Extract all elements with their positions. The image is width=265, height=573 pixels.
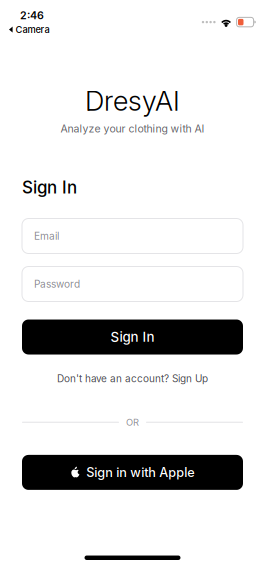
- button[interactable]: Camera: [9, 24, 49, 35]
- button[interactable]: Email: [22, 218, 243, 253]
- staticText: Camera: [15, 24, 49, 35]
- staticText: Don't have an account? Sign Up: [57, 372, 208, 385]
- staticText: DresyAI: [85, 84, 180, 117]
- staticText: Password: [34, 278, 80, 290]
- button[interactable]: Sign in with Apple: [22, 455, 243, 490]
- staticText: Sign In: [22, 177, 77, 197]
- staticText: Email: [34, 230, 59, 242]
- staticText: Sign In: [110, 329, 154, 345]
- button[interactable]: Password: [22, 266, 243, 301]
- staticText: OR: [126, 417, 139, 428]
- button[interactable]: Don't have an account? Sign Up: [51, 370, 214, 387]
- staticText: 2:46: [20, 9, 44, 22]
- staticText: Sign in with Apple: [86, 465, 194, 480]
- button[interactable]: Sign In: [22, 319, 243, 354]
- staticText: Analyze your clothing with AI: [60, 122, 204, 135]
